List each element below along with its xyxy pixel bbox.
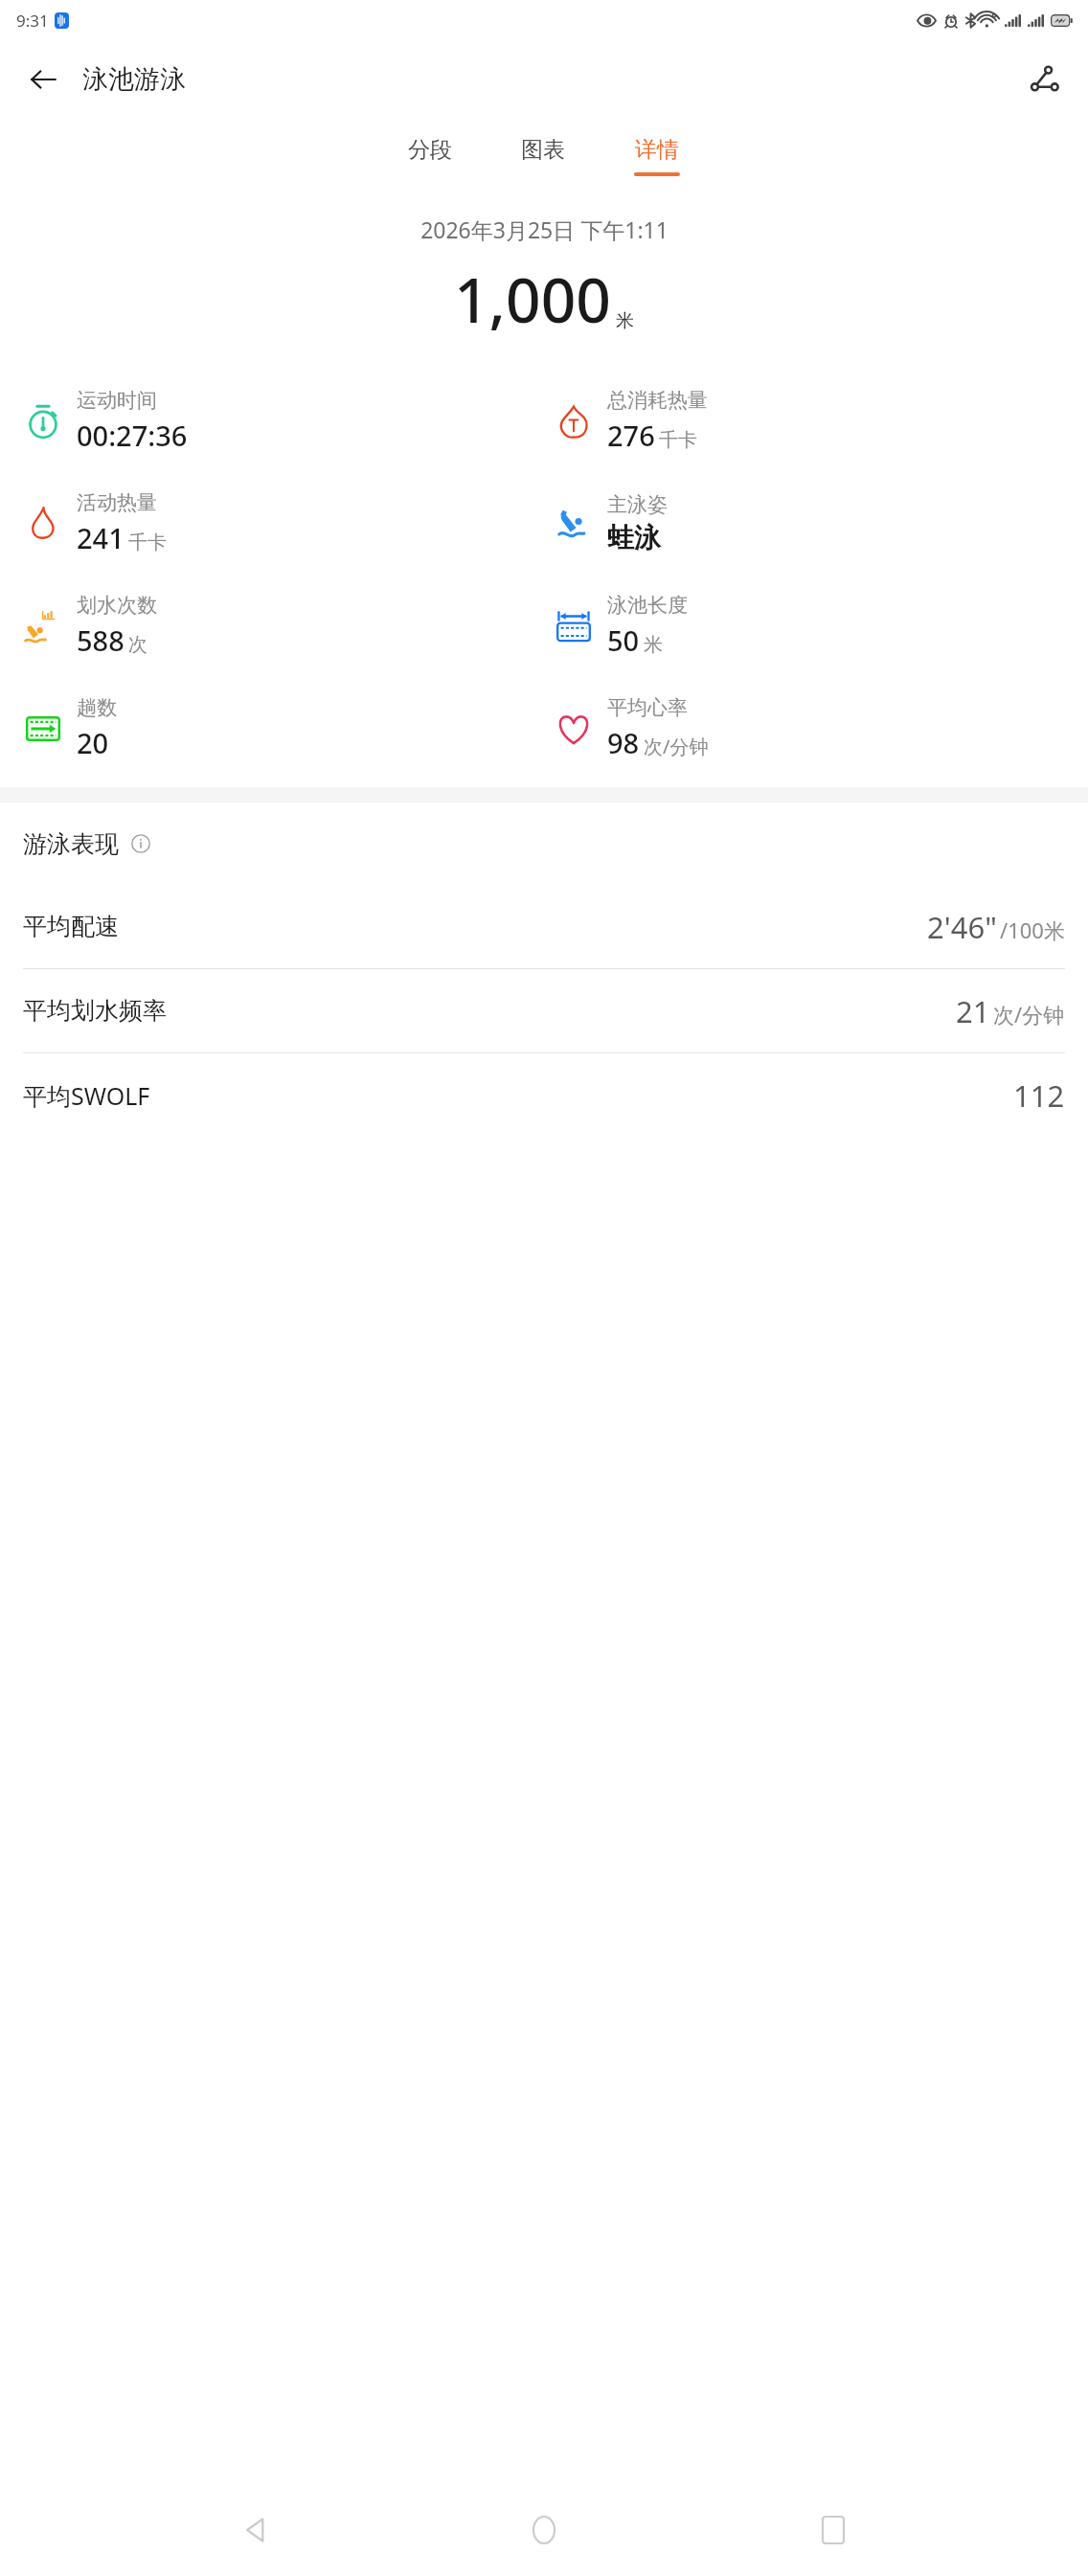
staticText: 米	[644, 633, 663, 657]
button[interactable]: 图表	[504, 132, 582, 180]
staticText: 主泳姿	[607, 492, 668, 517]
button[interactable]: 运动时间	[23, 370, 188, 472]
button[interactable]: Recents	[800, 2497, 867, 2564]
button[interactable]: Share	[1019, 54, 1071, 105]
staticText: 蛙泳	[607, 521, 661, 554]
button[interactable]: Info	[128, 831, 153, 856]
button[interactable]: 泳池长度	[554, 575, 688, 677]
staticText: 00:27:36	[77, 417, 188, 454]
staticText: 详情	[635, 136, 679, 164]
staticText: 平均配速	[23, 912, 119, 941]
button[interactable]: 平均配速	[0, 885, 1088, 968]
button[interactable]: 总消耗热量	[554, 370, 708, 472]
staticText: 泳池长度	[607, 593, 688, 618]
staticText: 泳池游泳	[82, 63, 186, 96]
staticText: 总消耗热量	[607, 388, 708, 413]
staticText: 分段	[408, 136, 452, 164]
button[interactable]: 平均心率	[554, 677, 709, 780]
staticText: 241	[77, 519, 125, 556]
staticText: 运动时间	[77, 388, 157, 413]
staticText: 20	[77, 724, 109, 761]
button[interactable]: 分段	[391, 132, 469, 180]
staticText: 平均心率	[607, 695, 688, 720]
staticText: 米	[616, 309, 634, 332]
button[interactable]: Home	[510, 2497, 578, 2564]
staticText: 平均划水频率	[23, 996, 167, 1026]
button[interactable]: 详情	[617, 132, 697, 180]
staticText: 图表	[521, 136, 565, 164]
staticText: 游泳表现	[23, 829, 119, 859]
staticText: 9:31	[16, 10, 49, 32]
staticText: 1,000	[454, 258, 611, 341]
button[interactable]: 主泳姿	[554, 472, 668, 575]
staticText: 276	[607, 417, 655, 454]
staticText: 次/分钟	[644, 734, 709, 759]
button[interactable]: 划水次数	[23, 575, 157, 677]
staticText: 千卡	[659, 428, 697, 452]
staticText: 2026年3月25日 下午1:11	[420, 215, 669, 244]
staticText: 50	[607, 621, 640, 659]
staticText: 趟数	[77, 695, 117, 720]
staticText: 平均SWOLF	[23, 1079, 150, 1112]
staticText: 划水次数	[77, 593, 157, 618]
button[interactable]: 趟数	[23, 677, 117, 780]
button[interactable]: Back	[17, 54, 69, 105]
staticText: 112	[1013, 1075, 1065, 1116]
staticText: 次	[128, 633, 147, 657]
staticText: /100米	[1000, 915, 1065, 944]
staticText: 588	[77, 621, 125, 659]
staticText: 2'46"	[927, 907, 997, 947]
button[interactable]: Back	[222, 2497, 289, 2564]
button[interactable]: 平均划水频率	[0, 969, 1088, 1052]
staticText: 21	[956, 991, 990, 1031]
staticText: 千卡	[128, 531, 167, 554]
button[interactable]: 平均SWOLF	[0, 1053, 1088, 1137]
button[interactable]: 活动热量	[23, 472, 167, 575]
staticText: 次/分钟	[993, 1000, 1065, 1028]
staticText: 98	[607, 724, 640, 761]
staticText: 活动热量	[77, 490, 157, 515]
